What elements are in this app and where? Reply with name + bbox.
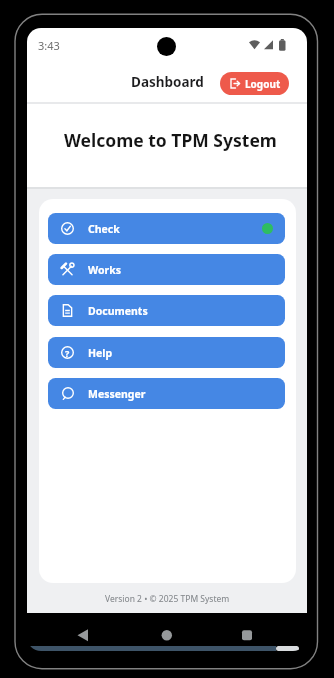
button[interactable]: Works bbox=[48, 254, 285, 285]
staticText: Check bbox=[88, 222, 120, 236]
button[interactable]: Check bbox=[48, 213, 285, 244]
staticText: Logout bbox=[245, 77, 281, 91]
button[interactable]: Documents bbox=[48, 295, 285, 326]
staticText: ? bbox=[65, 347, 70, 359]
button[interactable]: Logout bbox=[220, 72, 289, 95]
staticText: Messenger bbox=[88, 387, 146, 401]
staticText: Welcome to TPM System bbox=[64, 128, 277, 152]
button[interactable]: Messenger bbox=[48, 378, 285, 409]
staticText: Dashboard bbox=[131, 73, 204, 91]
staticText: Works bbox=[88, 263, 121, 277]
button[interactable]: Help bbox=[48, 337, 285, 368]
staticText: Version 2 • © 2025 TPM System bbox=[105, 593, 230, 605]
staticText: Documents bbox=[88, 304, 148, 318]
staticText: Help bbox=[88, 346, 113, 360]
staticText: 3:43 bbox=[38, 38, 60, 53]
